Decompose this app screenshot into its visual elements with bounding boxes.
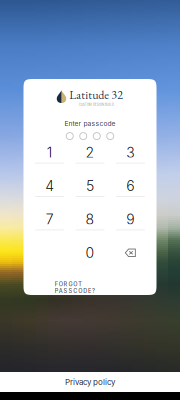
staticText: 2	[85, 144, 94, 161]
button[interactable]: Privacy policy	[0, 372, 180, 392]
staticText: 1	[47, 144, 53, 161]
staticText: 9	[126, 211, 134, 228]
button[interactable]: 8	[70, 210, 110, 244]
button[interactable]: 7	[29, 210, 70, 244]
button[interactable]: 1	[29, 144, 70, 177]
button[interactable]: 6	[110, 177, 150, 210]
button[interactable]: FORGOT PASSCODE?	[23, 277, 156, 291]
staticText: 7	[46, 211, 54, 228]
button[interactable]: 0	[70, 244, 110, 277]
staticText: 0	[85, 244, 94, 261]
staticText: 6	[126, 177, 134, 194]
staticText: 8	[85, 211, 94, 228]
staticText: Enter passcode	[64, 119, 115, 128]
staticText: 3	[126, 144, 134, 161]
button[interactable]: 9	[110, 210, 150, 244]
button[interactable]: Delete	[110, 244, 150, 277]
button[interactable]: 4	[29, 177, 70, 210]
staticText: 5	[86, 177, 94, 194]
staticText: CUSTOM DESIGN BUILD	[79, 103, 114, 107]
staticText: Latitude 32	[69, 87, 123, 103]
button[interactable]: 2	[70, 144, 110, 177]
staticText: 4	[45, 177, 54, 194]
button[interactable]: 3	[110, 144, 150, 177]
staticText: FORGOT PASSCODE?	[55, 281, 125, 288]
button[interactable]: 5	[70, 177, 110, 210]
staticText: Privacy policy	[65, 377, 115, 387]
